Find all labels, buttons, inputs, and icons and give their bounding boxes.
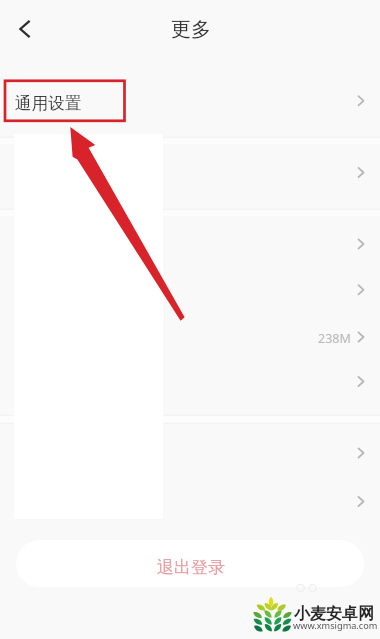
button[interactable]: 关于我们 xyxy=(0,359,380,415)
button[interactable]: 隐私设置 xyxy=(0,209,380,267)
button[interactable]: 意见反馈 xyxy=(0,423,380,477)
staticText: 退出登录 xyxy=(157,557,225,578)
staticText: www.xmsigma.com xyxy=(293,619,378,632)
button[interactable]: 消息设置 xyxy=(0,137,380,208)
button[interactable]: 退出登录 xyxy=(16,540,364,587)
button[interactable]: 清除缓存 xyxy=(0,313,380,359)
button[interactable]: 账号与安全 xyxy=(0,267,380,313)
button[interactable]: 返回 xyxy=(5,9,45,49)
staticText: 小麦安卓网 xyxy=(294,604,374,624)
button[interactable]: 通用设置 xyxy=(0,65,380,136)
staticText: 更多 xyxy=(171,17,211,42)
staticText: 通用设置 xyxy=(15,93,81,114)
staticText: 238M xyxy=(318,330,351,347)
button[interactable]: 检查更新 xyxy=(0,477,380,525)
